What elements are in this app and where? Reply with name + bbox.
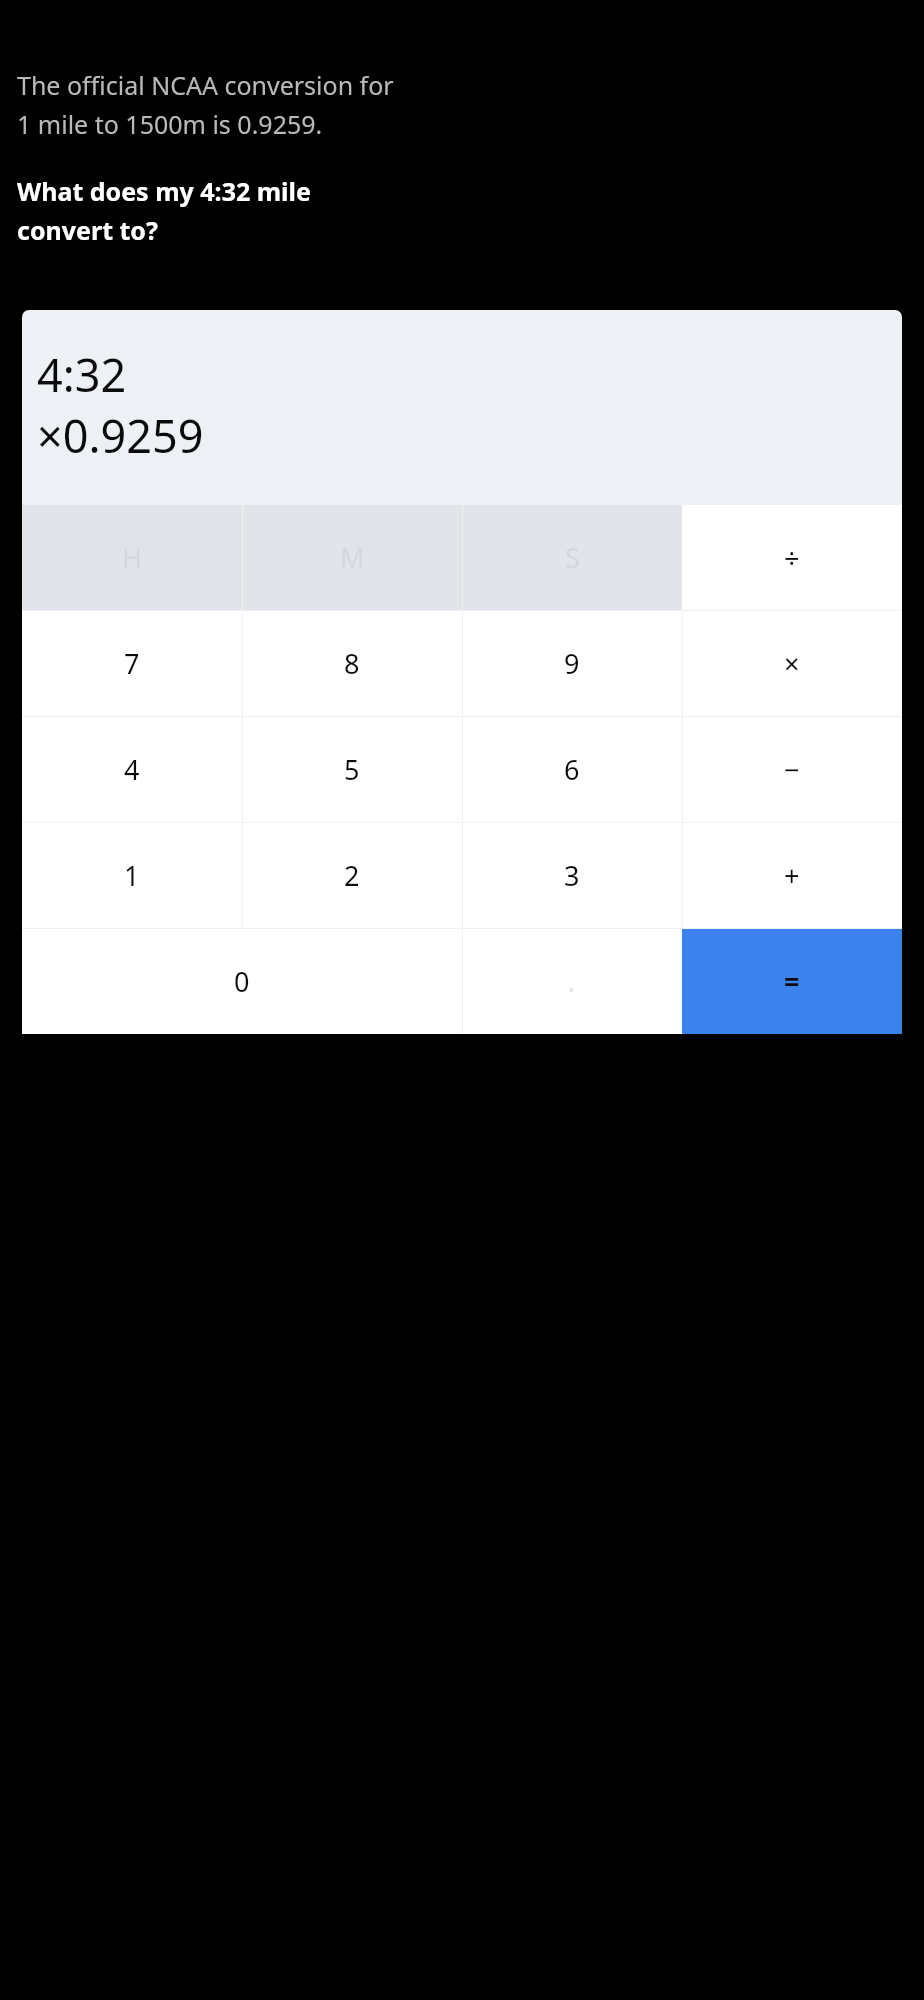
button[interactable]: 0 xyxy=(22,929,462,1034)
staticText: ÷ xyxy=(784,539,800,576)
button[interactable]: 7 xyxy=(22,611,242,716)
staticText: 8 xyxy=(344,645,360,682)
staticText: . xyxy=(568,963,576,1000)
staticText: H xyxy=(122,539,143,576)
button[interactable]: 4 xyxy=(22,717,242,822)
button[interactable]: 2 xyxy=(242,823,462,928)
button[interactable]: 4:32 xyxy=(22,310,902,505)
staticText: 4:32 xyxy=(37,344,127,405)
button[interactable]: Minus xyxy=(682,717,902,822)
staticText: 3 xyxy=(564,857,580,894)
button[interactable]: 6 xyxy=(462,717,682,822)
button[interactable]: 5 xyxy=(242,717,462,822)
staticText: − xyxy=(784,751,800,788)
button[interactable]: Plus xyxy=(682,823,902,928)
staticText: M xyxy=(340,539,365,576)
button[interactable]: 3 xyxy=(462,823,682,928)
staticText: = xyxy=(784,963,800,1000)
staticText: What does my 4:32 mile convert to? xyxy=(17,174,311,247)
staticText: The official NCAA conversion for 1 mile … xyxy=(17,68,394,141)
button[interactable]: 9 xyxy=(462,611,682,716)
button[interactable]: Equals xyxy=(682,929,902,1034)
staticText: 0 xyxy=(234,963,250,1000)
staticText: 1 xyxy=(124,857,140,894)
staticText: + xyxy=(784,857,800,894)
button[interactable]: Multiply xyxy=(682,611,902,716)
staticText: 6 xyxy=(564,751,580,788)
staticText: 2 xyxy=(344,857,360,894)
staticText: 4 xyxy=(124,751,140,788)
button[interactable]: 1 xyxy=(22,823,242,928)
staticText: 7 xyxy=(124,645,140,682)
button[interactable]: 8 xyxy=(242,611,462,716)
button[interactable]: Divide xyxy=(682,505,902,610)
staticText: ×0.9259 xyxy=(37,405,204,466)
staticText: S xyxy=(565,539,580,576)
staticText: × xyxy=(784,645,800,682)
staticText: 5 xyxy=(344,751,360,788)
staticText: 9 xyxy=(564,645,580,682)
